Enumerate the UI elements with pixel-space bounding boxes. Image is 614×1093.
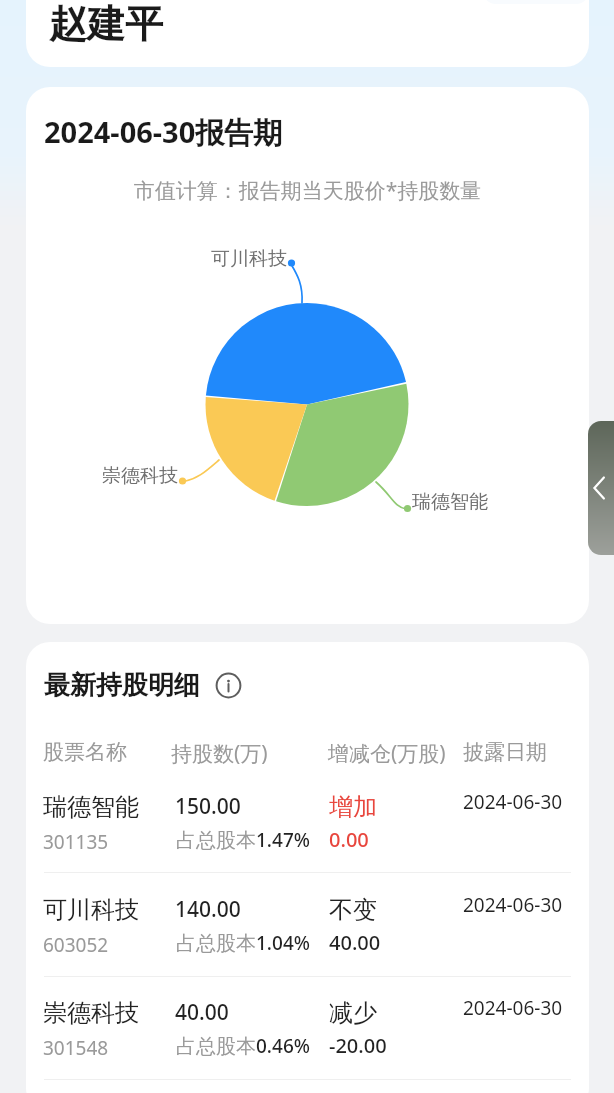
staticText: 40.00 [329, 929, 381, 956]
other: 说明 [215, 672, 242, 699]
staticText: 2024-06-30 [463, 789, 563, 815]
staticText: 可川科技 [211, 247, 287, 271]
staticText: 150.00 [175, 792, 241, 821]
staticText: 2024-06-30 [463, 995, 563, 1021]
staticText: 占总股本 [176, 1034, 256, 1059]
staticText: 瑞德智能 [412, 490, 488, 514]
staticText: 减少 [329, 998, 377, 1028]
staticText: 603052 [43, 932, 109, 958]
button[interactable]: 最新持股明细 [44, 669, 242, 702]
staticText: 1.04% [256, 930, 310, 956]
staticText: 占总股本 [176, 931, 256, 956]
staticText: 市值计算：报告期当天股价*持股数量 [26, 176, 589, 205]
staticText: 增减仓(万股) [328, 739, 446, 768]
button[interactable]: 可川科技 [26, 895, 589, 995]
staticText: 崇德科技 [43, 998, 139, 1028]
staticText: 披露日期 [463, 739, 547, 765]
staticText: 2024-06-30报告期 [44, 112, 283, 152]
staticText: -20.00 [329, 1032, 387, 1059]
staticText: 1.47% [256, 827, 310, 853]
staticText: 301548 [43, 1035, 109, 1061]
button[interactable]: 崇德科技 [26, 998, 589, 1093]
staticText: 最新持股明细 [44, 669, 200, 702]
staticText: 占总股本 [176, 828, 256, 853]
staticText: 0.00 [329, 826, 369, 853]
staticText: 140.00 [175, 895, 241, 924]
staticText: 赵建平 [49, 0, 163, 48]
staticText: 瑞德智能 [43, 792, 139, 822]
staticText: 可川科技 [43, 895, 139, 925]
staticText: 股票名称 [43, 739, 127, 765]
staticText: 崇德科技 [102, 464, 178, 488]
staticText: 40.00 [175, 998, 229, 1027]
staticText: 持股数(万) [171, 739, 268, 768]
staticText: 不变 [329, 895, 377, 925]
staticText: 0.46% [256, 1033, 310, 1059]
staticText: 301135 [43, 829, 109, 855]
button[interactable]: 展开侧栏 [588, 421, 614, 555]
staticText: 2024-06-30 [463, 892, 563, 918]
staticText: 增加 [329, 792, 377, 822]
button[interactable]: 瑞德智能 [26, 792, 589, 892]
